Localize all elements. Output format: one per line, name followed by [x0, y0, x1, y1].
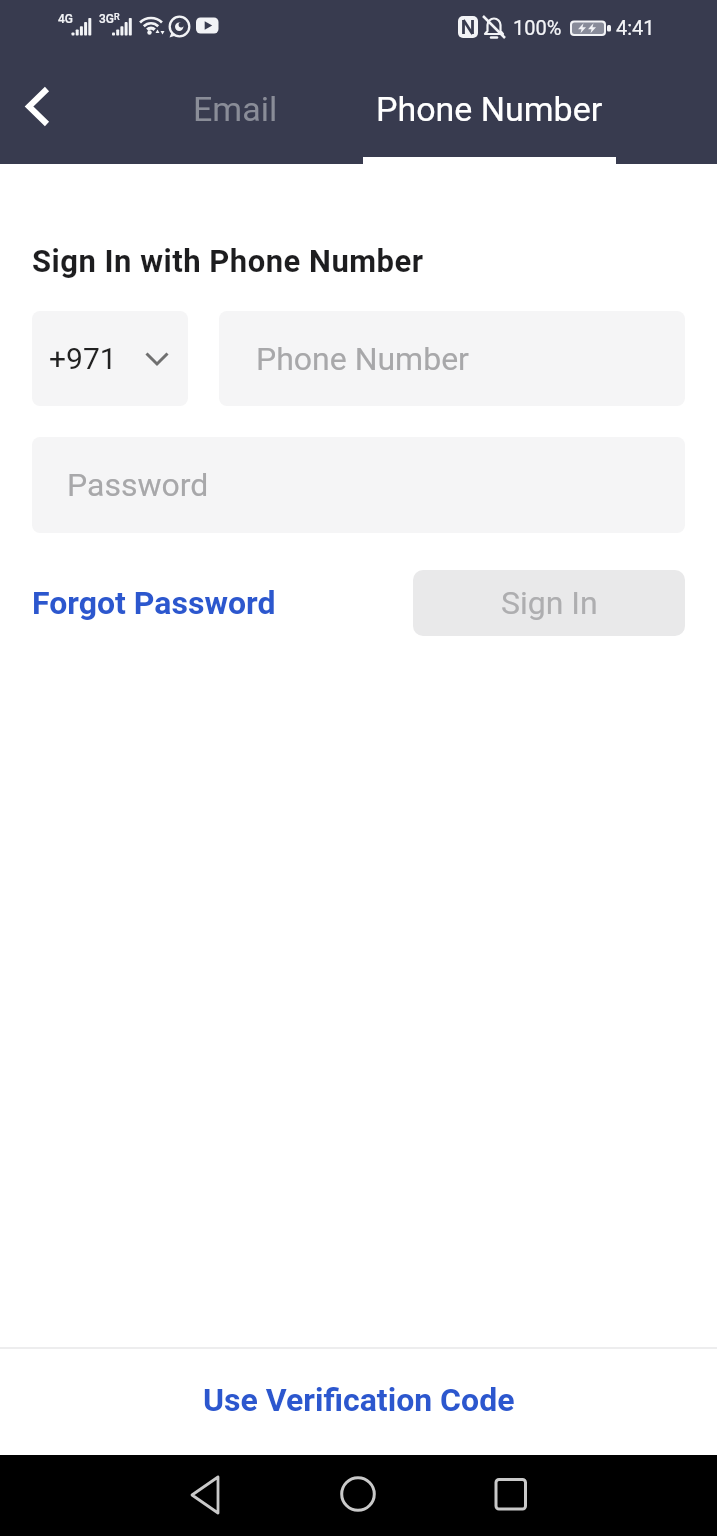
button[interactable]: Email [107, 67, 363, 151]
button[interactable]: Phone Number [363, 67, 616, 151]
staticText: Sign In with Phone Number [32, 243, 424, 279]
button[interactable]: Password [32, 437, 685, 533]
button[interactable] [486, 1470, 534, 1518]
staticText: +971 [49, 341, 117, 376]
staticText: R [114, 12, 120, 23]
staticText: Sign In [501, 584, 598, 622]
staticText: Forgot Password [32, 584, 276, 622]
staticText: Phone Number [376, 89, 603, 129]
button[interactable]: Use Verification Code [0, 1367, 717, 1433]
staticText: 3G [99, 12, 114, 26]
button[interactable]: Forgot Password [32, 570, 276, 636]
staticText: Email [193, 89, 278, 129]
button[interactable] [334, 1470, 382, 1518]
staticText: 100% [513, 16, 562, 39]
staticText: Password [67, 466, 209, 504]
button[interactable]: +971 [32, 311, 188, 406]
staticText: Use Verification Code [203, 1381, 515, 1419]
staticText: 4:41 [616, 16, 655, 39]
button[interactable] [14, 84, 62, 132]
staticText: Phone Number [256, 340, 469, 378]
button[interactable] [181, 1471, 229, 1519]
staticText: 4G [58, 12, 73, 26]
button[interactable]: Sign In [413, 570, 685, 636]
button[interactable]: Phone Number [219, 311, 685, 406]
